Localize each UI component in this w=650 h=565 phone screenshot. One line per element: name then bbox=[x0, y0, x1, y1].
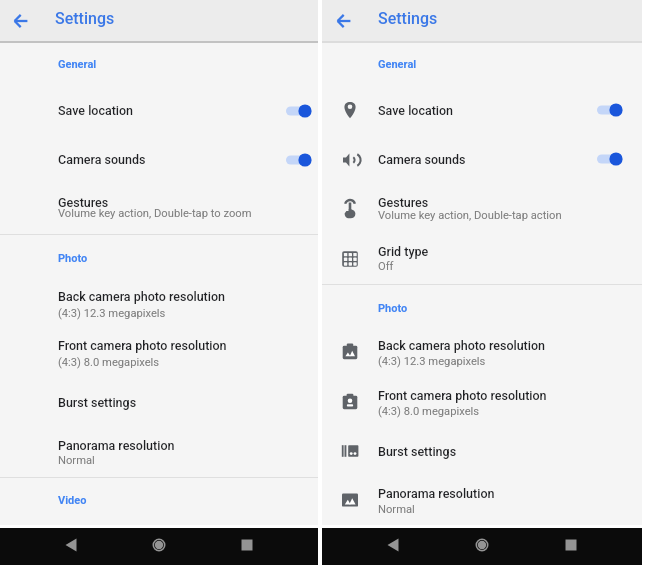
staticText: General bbox=[58, 58, 97, 71]
button[interactable]: Home bbox=[143, 529, 175, 561]
staticText: Burst settings bbox=[378, 444, 457, 459]
staticText: Off bbox=[378, 260, 394, 273]
staticText: Burst settings bbox=[58, 395, 137, 410]
staticText: (4:3) 8.0 megapixels bbox=[58, 356, 160, 369]
button[interactable]: Photo bbox=[0, 248, 318, 272]
staticText: Camera sounds bbox=[58, 152, 146, 167]
staticText: Settings bbox=[55, 9, 115, 28]
button[interactable]: Recent apps bbox=[555, 529, 587, 561]
button[interactable]: Toggle setting bbox=[590, 97, 630, 123]
button[interactable]: Burst settings bbox=[0, 382, 318, 424]
staticText: Gestures bbox=[378, 195, 429, 210]
staticText: Camera sounds bbox=[378, 152, 466, 167]
button[interactable]: Home bbox=[466, 529, 498, 561]
button[interactable]: Photo bbox=[322, 298, 642, 322]
button[interactable]: Save location bbox=[0, 88, 318, 134]
staticText: Volume key action, Double-tap action bbox=[378, 209, 562, 222]
button[interactable]: Back camera photo resolution bbox=[0, 280, 318, 326]
button[interactable]: Front camera photo resolution bbox=[322, 380, 642, 424]
staticText: Settings bbox=[378, 9, 438, 28]
button[interactable]: Camera sounds bbox=[0, 137, 318, 183]
staticText: Normal bbox=[58, 454, 95, 467]
button[interactable]: Camera sounds bbox=[322, 137, 642, 183]
staticText: Back camera photo resolution bbox=[378, 338, 546, 353]
staticText: (4:3) 12.3 megapixels bbox=[58, 307, 166, 320]
staticText: Panorama resolution bbox=[58, 438, 175, 453]
button[interactable]: General bbox=[0, 54, 318, 78]
button[interactable]: Grid type bbox=[322, 235, 642, 280]
staticText: General bbox=[378, 58, 417, 71]
staticText: Gestures bbox=[58, 195, 109, 210]
staticText: (4:3) 8.0 megapixels bbox=[378, 405, 480, 418]
staticText: Photo bbox=[378, 302, 408, 315]
button[interactable]: Toggle setting bbox=[279, 147, 319, 173]
staticText: Photo bbox=[58, 252, 88, 265]
staticText: Save location bbox=[378, 103, 454, 118]
button[interactable]: Front camera photo resolution bbox=[0, 330, 318, 376]
button[interactable]: Burst settings bbox=[322, 432, 642, 472]
staticText: Front camera photo resolution bbox=[58, 338, 227, 353]
button[interactable]: Back bbox=[377, 529, 409, 561]
button[interactable]: General bbox=[322, 54, 642, 78]
staticText: Video bbox=[58, 494, 87, 507]
button[interactable]: Save location bbox=[322, 88, 642, 134]
button[interactable]: Navigate back bbox=[330, 7, 358, 35]
staticText: Front camera photo resolution bbox=[378, 388, 547, 403]
button[interactable]: Toggle setting bbox=[279, 98, 319, 124]
button[interactable]: Panorama resolution bbox=[0, 428, 318, 474]
staticText: Back camera photo resolution bbox=[58, 289, 226, 304]
button[interactable]: Back camera photo resolution bbox=[322, 330, 642, 374]
staticText: Grid type bbox=[378, 244, 429, 259]
button[interactable]: Gestures bbox=[0, 185, 318, 230]
button[interactable]: Gestures bbox=[322, 185, 642, 230]
staticText: Save location bbox=[58, 103, 134, 118]
button[interactable]: Video bbox=[0, 490, 318, 514]
button[interactable]: Navigate back bbox=[7, 7, 35, 35]
button[interactable]: Toggle setting bbox=[590, 146, 630, 172]
staticText: Volume key action, Double-tap to zoom bbox=[58, 207, 252, 220]
button[interactable]: Panorama resolution bbox=[322, 478, 642, 522]
button[interactable]: Back bbox=[55, 529, 87, 561]
button[interactable]: Recent apps bbox=[231, 529, 263, 561]
staticText: Panorama resolution bbox=[378, 486, 495, 501]
staticText: (4:3) 12.3 megapixels bbox=[378, 355, 486, 368]
staticText: Normal bbox=[378, 503, 415, 516]
